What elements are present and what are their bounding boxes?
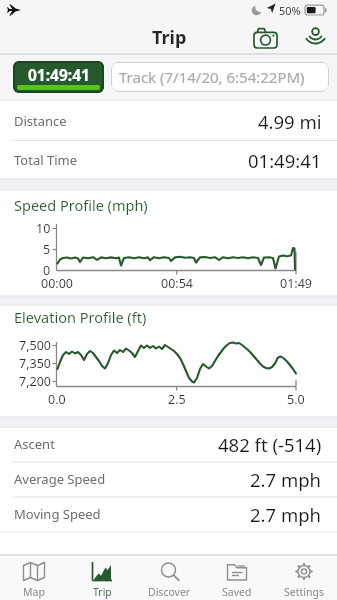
staticText: Moving Speed — [14, 505, 101, 523]
staticText: 2.5 — [168, 391, 186, 408]
staticText: 2.7 mph — [250, 502, 322, 527]
button[interactable] — [248, 24, 284, 54]
button[interactable]: Discover — [136, 556, 203, 600]
staticText: Elevation Profile (ft) — [14, 307, 147, 327]
staticText: 50% — [279, 3, 301, 18]
staticText: Average Speed — [14, 470, 106, 488]
staticText: Trip — [152, 25, 187, 50]
staticText: 5 — [43, 241, 51, 258]
staticText: 01:49 — [280, 275, 312, 292]
button[interactable]: Saved — [203, 556, 270, 600]
button[interactable] — [298, 24, 332, 54]
staticText: 7,500 — [19, 337, 51, 354]
staticText: Total Time — [14, 151, 77, 169]
button[interactable]: Settings — [270, 556, 337, 600]
staticText: 0 — [43, 262, 51, 279]
staticText: 10 — [36, 220, 51, 237]
staticText: 2.7 mph — [250, 467, 322, 492]
button[interactable]: Track (7/14/20, 6:54:22PM) — [111, 62, 329, 92]
staticText: 01:49:41 — [28, 64, 90, 85]
staticText: 0.0 — [48, 391, 66, 408]
staticText: 7,200 — [19, 373, 51, 390]
staticText: Track (7/14/20, 6:54:22PM) — [119, 67, 305, 87]
staticText: Trip — [93, 585, 112, 599]
staticText: 01:49:41 — [248, 148, 322, 173]
staticText: 4.99 mi — [258, 109, 322, 134]
staticText: Distance — [14, 112, 67, 130]
button[interactable]: 01:49:41 — [13, 61, 104, 93]
staticText: 482 ft (-514) — [218, 432, 322, 457]
staticText: Saved — [222, 585, 252, 599]
staticText: Discover — [148, 585, 191, 599]
button[interactable]: Trip — [68, 556, 136, 600]
staticText: 5.0 — [287, 391, 305, 408]
staticText: Settings — [284, 585, 324, 599]
staticText: Speed Profile (mph) — [14, 195, 148, 215]
button[interactable]: Map — [0, 556, 68, 600]
staticText: Map — [23, 585, 45, 599]
staticText: 7,350 — [19, 355, 51, 372]
staticText: 00:00 — [41, 275, 73, 292]
staticText: Ascent — [14, 435, 55, 453]
staticText: 00:54 — [161, 275, 193, 292]
